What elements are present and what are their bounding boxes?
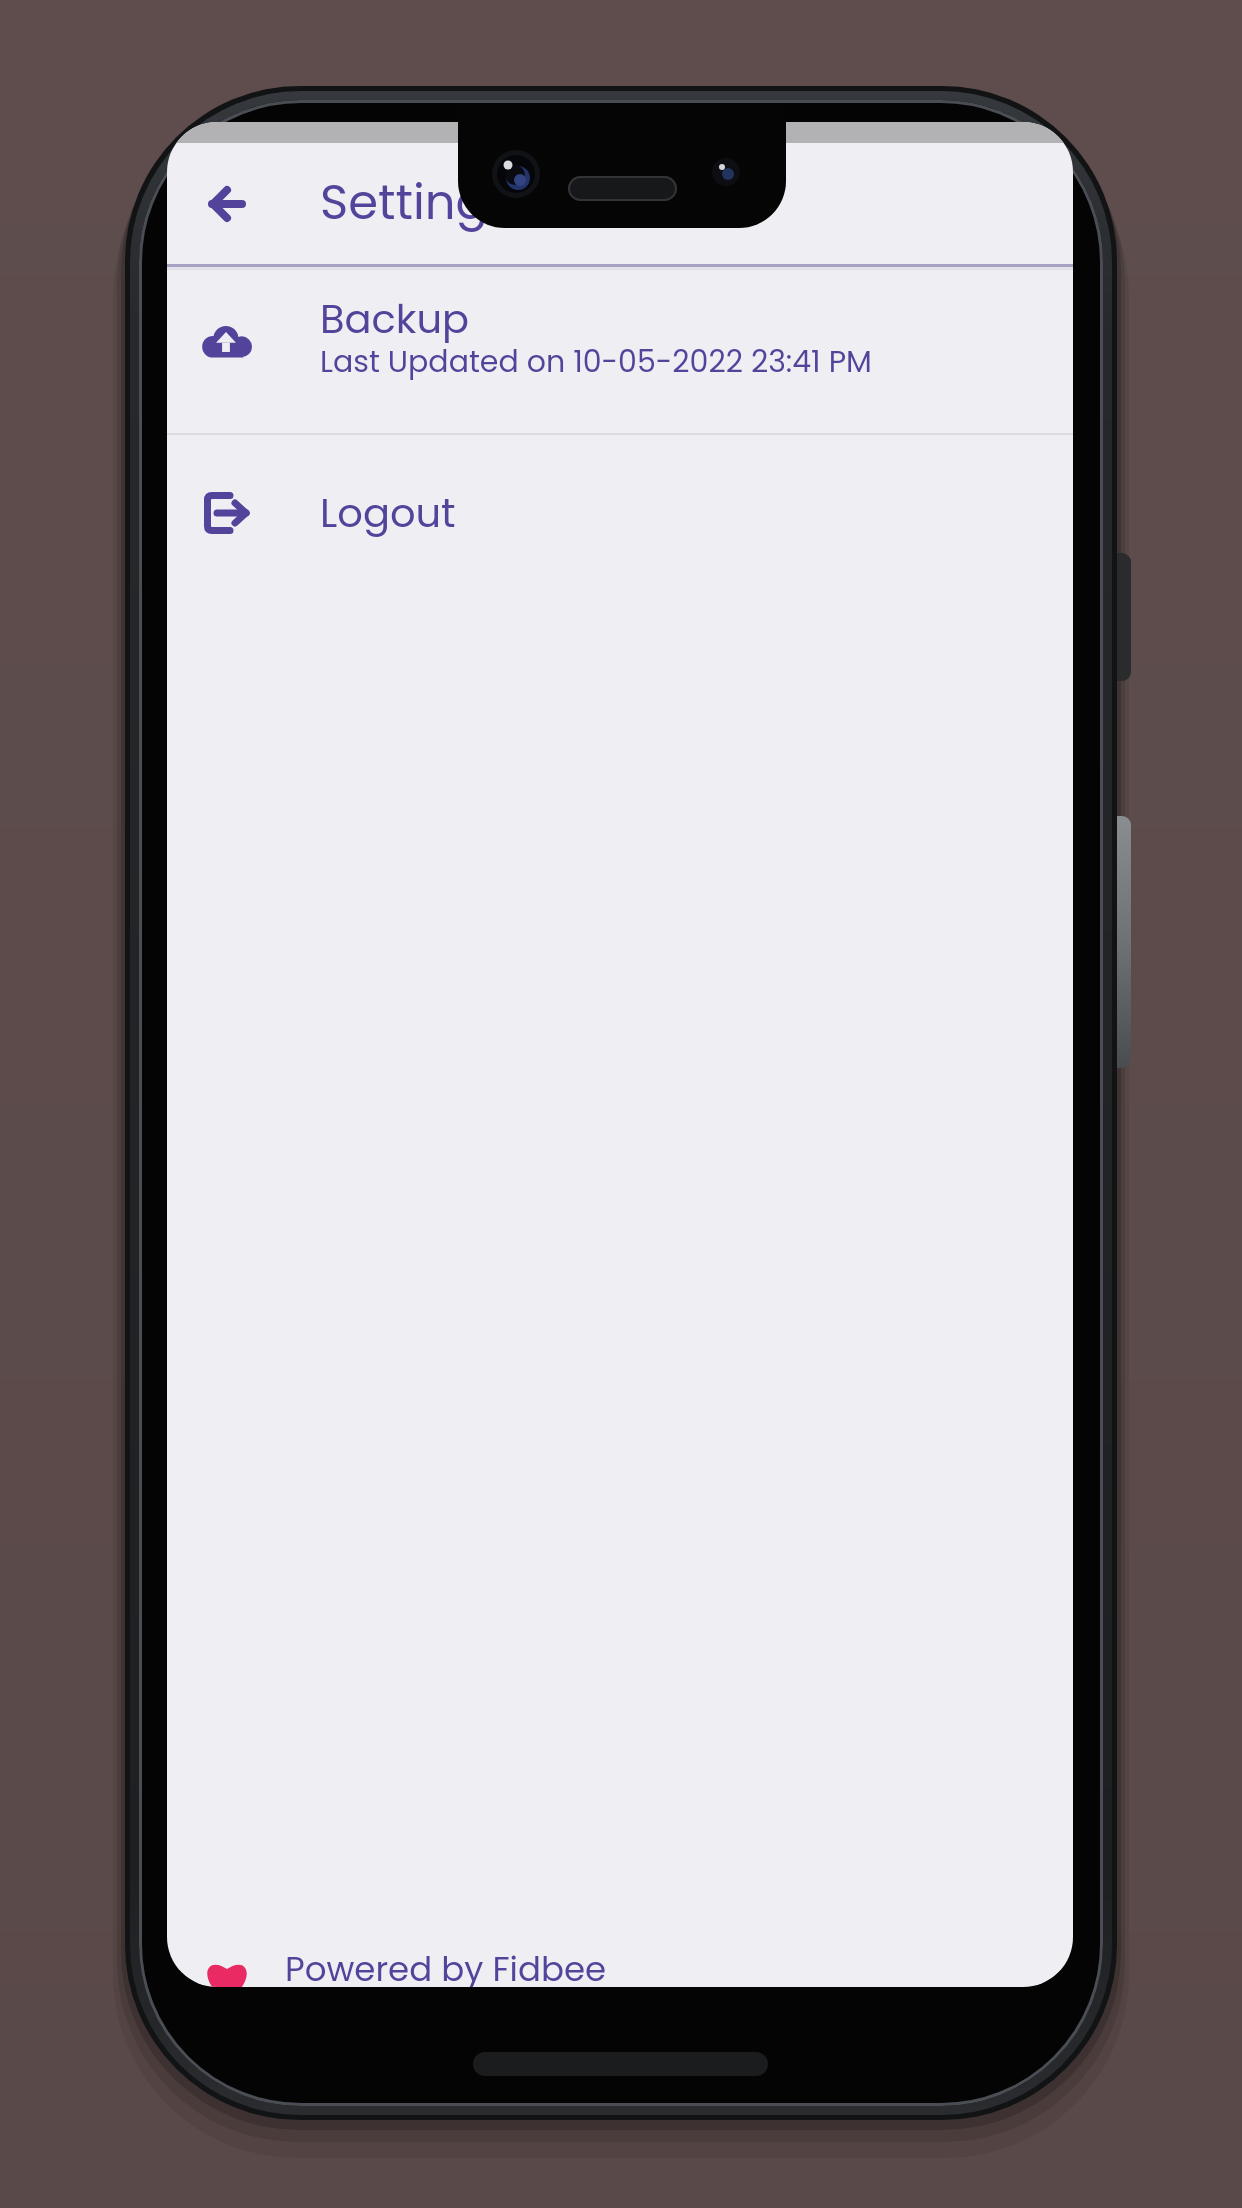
button[interactable]: Backup [167, 267, 1073, 433]
staticText: Backup [320, 291, 470, 347]
button[interactable] [191, 168, 263, 240]
button[interactable]: Powered by Fidbee [167, 1927, 1073, 1987]
button[interactable]: Logout [167, 435, 1073, 595]
staticText: Powered by Fidbee [285, 1945, 607, 1987]
staticText: Logout [320, 485, 456, 541]
staticText: Settings [320, 169, 513, 236]
staticText: Last Updated on 10-05-2022 23:41 PM [320, 341, 872, 383]
